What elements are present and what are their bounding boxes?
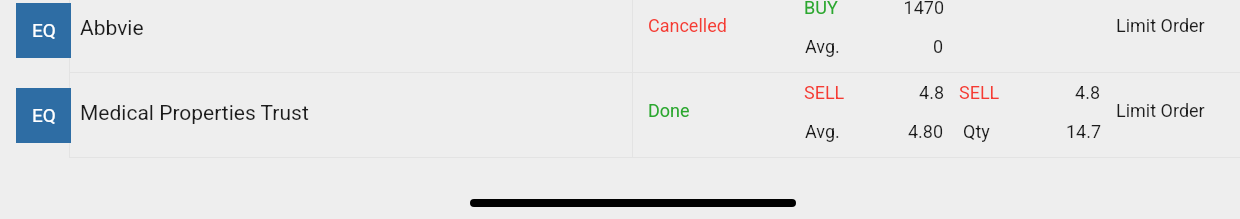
other: Home [470, 199, 796, 207]
staticText: 1470 [824, 0, 944, 18]
staticText: SELL [804, 82, 845, 103]
staticText: Cancelled [648, 15, 727, 36]
staticText: Done [648, 100, 690, 121]
staticText: 4.8 [824, 82, 944, 103]
staticText: Medical Properties Trust [80, 101, 309, 126]
staticText: Limit Order [1116, 100, 1205, 121]
staticText: SELL [959, 82, 1000, 103]
staticText: EQ [32, 19, 56, 41]
staticText: Qty [963, 121, 990, 142]
button[interactable]: Equity [0, 72, 1240, 157]
button[interactable]: Equity [16, 88, 71, 143]
staticText: 0 [823, 36, 943, 57]
staticText: 4.8 [1000, 82, 1100, 103]
staticText: Abbvie [80, 16, 144, 41]
button[interactable]: Equity [16, 3, 71, 58]
staticText: Limit Order [1116, 15, 1205, 36]
staticText: BUY [804, 0, 838, 18]
staticText: 4.80 [823, 121, 943, 142]
staticText: 14.7 [1001, 121, 1101, 142]
staticText: Avg. [805, 36, 840, 57]
staticText: Avg. [805, 121, 840, 142]
staticText: EQ [32, 104, 56, 126]
button[interactable]: Equity [0, 0, 1240, 72]
